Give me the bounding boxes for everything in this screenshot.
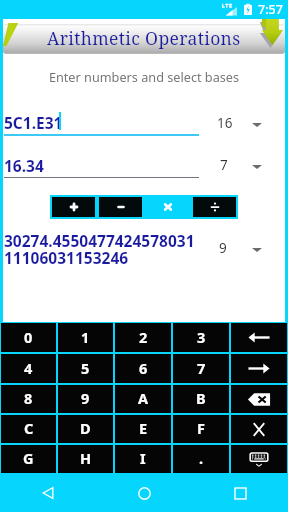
button[interactable]: E: [115, 415, 171, 443]
staticText: 5C1.E31: [4, 112, 63, 133]
button[interactable]: Base 16: [205, 109, 285, 135]
button[interactable]: Multiply: [146, 197, 189, 217]
staticText: 0: [24, 327, 33, 347]
staticText: 7: [197, 358, 206, 378]
button[interactable]: 9: [58, 385, 113, 413]
button[interactable]: B: [173, 385, 229, 413]
button[interactable]: A: [115, 385, 171, 413]
staticText: 1: [81, 327, 90, 347]
staticText: E: [139, 418, 148, 438]
staticText: 4: [24, 358, 33, 378]
staticText: 16: [217, 114, 233, 132]
button[interactable]: .: [173, 445, 229, 473]
button[interactable]: Base 9: [205, 234, 285, 260]
button[interactable]: 4: [1, 354, 56, 383]
staticText: 7:57: [258, 1, 283, 18]
button[interactable]: Move left: [231, 323, 287, 352]
button[interactable]: 5: [58, 354, 113, 383]
staticText: 6: [139, 358, 148, 378]
staticText: 7: [220, 156, 228, 174]
staticText: D: [80, 418, 91, 438]
staticText: 2: [139, 327, 148, 347]
button[interactable]: F: [173, 415, 229, 443]
button[interactable]: 1: [58, 323, 113, 352]
button[interactable]: Hide keyboard: [231, 445, 287, 473]
button[interactable]: G: [1, 445, 56, 473]
button[interactable]: Backspace: [231, 385, 287, 413]
staticText: 9: [81, 388, 90, 408]
button[interactable]: D: [58, 415, 113, 443]
button[interactable]: 8: [1, 385, 56, 413]
staticText: 9: [219, 239, 227, 257]
button[interactable]: 6: [115, 354, 171, 383]
staticText: Arithmetic Operations: [47, 26, 241, 50]
staticText: G: [23, 448, 34, 468]
button[interactable]: I: [115, 445, 171, 473]
button[interactable]: C: [1, 415, 56, 443]
staticText: I: [140, 448, 146, 468]
button[interactable]: Recent apps: [192, 474, 288, 512]
button[interactable]: Move right: [231, 354, 287, 383]
staticText: F: [197, 418, 205, 438]
button[interactable]: Back: [0, 474, 96, 512]
staticText: 3: [197, 327, 206, 347]
staticText: 16.34: [4, 155, 44, 176]
staticText: 8: [24, 388, 33, 408]
staticText: Enter numbers and select bases: [0, 68, 288, 85]
button[interactable]: 2: [115, 323, 171, 352]
staticText: 30274.4550477424578031 11106031153246: [4, 230, 195, 268]
button[interactable]: Subtract: [99, 197, 142, 217]
button[interactable]: 3: [173, 323, 229, 352]
button[interactable]: 0: [1, 323, 56, 352]
button[interactable]: H: [58, 445, 113, 473]
staticText: A: [138, 388, 149, 408]
staticText: B: [196, 388, 206, 408]
staticText: .: [199, 448, 204, 468]
staticText: H: [80, 448, 92, 468]
staticText: C: [24, 418, 34, 438]
button[interactable]: Add: [52, 197, 95, 217]
button[interactable]: Home: [96, 474, 192, 512]
button[interactable]: Clear: [231, 415, 287, 443]
staticText: 5: [81, 358, 90, 378]
button[interactable]: Base 7: [205, 151, 285, 177]
button[interactable]: Divide: [193, 197, 236, 217]
button[interactable]: 7: [173, 354, 229, 383]
